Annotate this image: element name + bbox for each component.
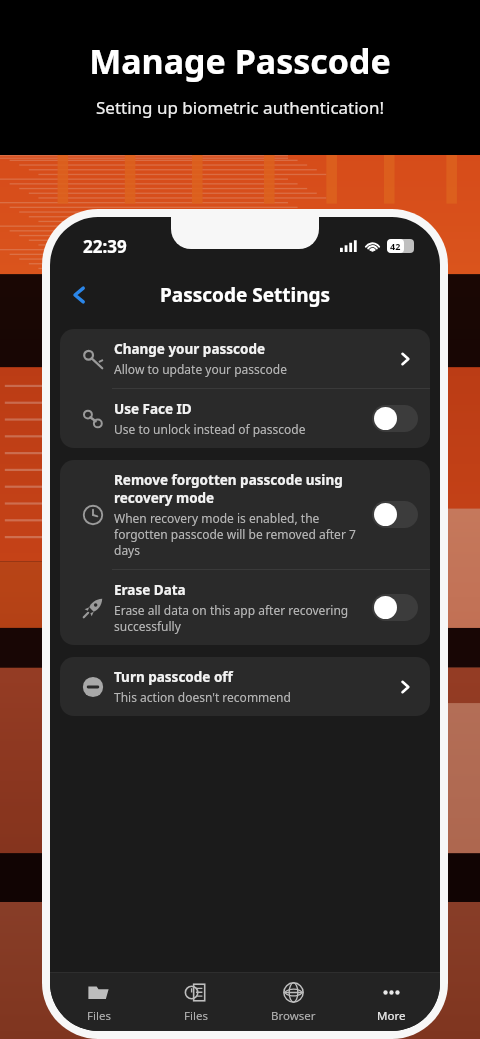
staticText: Allow to update your passcode [114, 361, 287, 377]
staticText: Erase all data on this app after recover… [114, 602, 349, 634]
staticText: Browser [271, 1008, 316, 1024]
button[interactable]: Erase Data [60, 570, 430, 645]
staticText: More [377, 1008, 406, 1024]
staticText: Use Face ID [114, 400, 192, 418]
button[interactable]: Toggle [372, 594, 418, 621]
staticText: Passcode Settings [160, 282, 331, 308]
staticText: When recovery mode is enabled, the forgo… [114, 510, 356, 558]
staticText: 42 [390, 240, 401, 252]
button[interactable]: More [342, 973, 440, 1031]
other: Open [392, 346, 418, 372]
staticText: This action doesn't recommend [114, 689, 291, 705]
staticText: Files [184, 1008, 208, 1024]
button[interactable]: Use Face ID [60, 389, 430, 448]
button[interactable]: Remove forgotten passcode using recovery… [60, 460, 430, 569]
staticText: Files [87, 1008, 111, 1024]
button[interactable]: Turn passcode off [60, 657, 430, 716]
staticText: Turn passcode off [114, 668, 233, 686]
button[interactable]: Browser [244, 973, 342, 1031]
other: Open [392, 674, 418, 700]
button[interactable]: Toggle [372, 405, 418, 432]
button[interactable]: Toggle [372, 501, 418, 528]
button[interactable]: Back [60, 275, 100, 315]
staticText: Setting up biometric authentication! [96, 96, 384, 119]
staticText: Erase Data [114, 581, 186, 599]
button[interactable]: Files [147, 973, 244, 1031]
button[interactable]: Files [50, 973, 147, 1031]
staticText: Manage Passcode [89, 38, 391, 84]
button[interactable]: Change your passcode [60, 329, 430, 388]
staticText: Change your passcode [114, 340, 266, 358]
staticText: Remove forgotten passcode using recovery… [114, 471, 343, 507]
staticText: Use to unlock instead of passcode [114, 421, 306, 437]
staticText: 22:39 [83, 235, 127, 258]
